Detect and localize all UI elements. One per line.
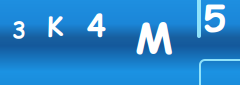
staticText: 3 (12, 14, 26, 46)
staticText: M (135, 8, 173, 67)
staticText: K (47, 8, 63, 45)
staticText: 4 (87, 4, 106, 47)
staticText: 5 (203, 0, 226, 44)
